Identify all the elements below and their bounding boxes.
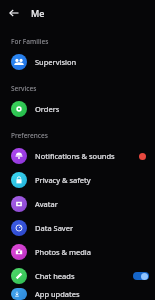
button[interactable]: Avatar: [0, 192, 155, 216]
staticText: Privacy & safety: [35, 175, 149, 185]
staticText: Chat heads: [35, 271, 133, 281]
button[interactable]: Data Saver: [0, 216, 155, 240]
staticText: Preferences: [11, 131, 48, 140]
staticText: Notifications & sounds: [35, 151, 139, 161]
staticText: Avatar: [35, 199, 149, 209]
button[interactable]: App updates: [0, 288, 155, 300]
button[interactable]: Photos & media: [0, 240, 155, 264]
staticText: App updates: [35, 289, 149, 299]
staticText: Photos & media: [35, 247, 149, 257]
staticText: Services: [11, 84, 37, 93]
button[interactable]: Chat heads: [0, 264, 155, 288]
staticText: For Families: [11, 37, 49, 46]
staticText: Data Saver: [35, 223, 149, 233]
button[interactable]: Privacy & safety: [0, 168, 155, 192]
staticText: Supervision: [35, 57, 149, 67]
button[interactable]: Orders: [0, 97, 155, 121]
button[interactable]: Back: [6, 5, 22, 21]
staticText: Me: [31, 7, 45, 19]
button[interactable]: Supervision: [0, 50, 155, 74]
staticText: Orders: [35, 104, 149, 114]
button[interactable]: Notifications & sounds: [0, 144, 155, 168]
